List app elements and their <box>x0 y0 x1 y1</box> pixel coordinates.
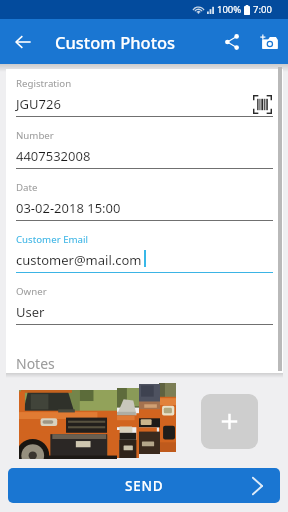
button[interactable]: Photo <box>19 390 117 459</box>
staticText: SEND <box>125 477 164 495</box>
staticText: 03-02-2018 15:00 <box>16 199 121 217</box>
staticText: customer@mail.com <box>16 251 142 269</box>
button[interactable]: Add photo <box>249 22 288 62</box>
button[interactable]: Navigate up <box>4 23 41 60</box>
staticText: Number <box>16 129 54 142</box>
staticText: 7:00 <box>253 3 272 16</box>
button[interactable]: Share <box>212 22 252 62</box>
staticText: Owner <box>16 285 47 298</box>
staticText: Customer Email <box>16 233 89 246</box>
button[interactable]: SEND <box>8 468 280 503</box>
staticText: Custom Photos <box>55 31 176 53</box>
staticText: User <box>16 303 45 321</box>
staticText: 100% <box>217 3 242 16</box>
staticText: Date <box>16 181 38 194</box>
staticText: Registration <box>16 77 72 90</box>
staticText: Notes <box>16 354 55 371</box>
button[interactable]: Add photo <box>201 394 258 449</box>
staticText: JGU726 <box>16 95 61 113</box>
staticText: 4407532008 <box>16 147 91 165</box>
